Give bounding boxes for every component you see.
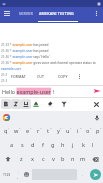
button[interactable]: c: [38, 152, 48, 166]
staticText: 2: [19, 126, 21, 129]
staticText: Hello example-user !: [2, 88, 54, 95]
button[interactable]: m: [78, 152, 88, 166]
button[interactable]: COPY: [52, 70, 74, 83]
button[interactable]: t: [43, 124, 53, 138]
staticText: .: [82, 172, 84, 177]
staticText: #MEKANI TESTING: [39, 11, 74, 16]
button[interactable]: u: [63, 124, 73, 138]
button[interactable]: h: [58, 138, 68, 152]
button[interactable]: Google search: [3, 114, 10, 121]
staticText: v: [52, 155, 55, 163]
button[interactable]: e: [22, 124, 33, 138]
button[interactable]: Voice input: [93, 114, 100, 121]
staticText: SERVER: [19, 11, 33, 16]
staticText: 9: [90, 126, 92, 129]
button[interactable]: Backspace: [88, 152, 103, 166]
button[interactable]: n: [68, 152, 78, 166]
button[interactable]: k: [78, 138, 88, 152]
button[interactable]: More options: [90, 7, 103, 20]
staticText: 1: [8, 126, 10, 129]
button[interactable]: s: [17, 138, 28, 152]
button[interactable]: x: [27, 152, 38, 166]
staticText: q: [4, 127, 8, 135]
button[interactable]: Italic: [11, 99, 21, 109]
button[interactable]: Emoji: [22, 166, 31, 183]
staticText: t: [47, 127, 50, 135]
staticText: 21:36 * example-user says 'Hello': [1, 53, 102, 59]
staticText: e: [26, 127, 30, 135]
button[interactable]: Shift: [0, 152, 16, 166]
button[interactable]: CUT: [30, 70, 52, 83]
button[interactable]: #MEKANI TESTING: [39, 7, 74, 20]
button[interactable]: Bold: [1, 99, 11, 109]
staticText: 4: [40, 126, 42, 129]
staticText: z: [20, 155, 23, 163]
button[interactable]: v: [48, 152, 58, 166]
button[interactable]: Text colour: [31, 99, 41, 109]
button[interactable]: f: [38, 138, 48, 152]
staticText: d: [31, 141, 35, 149]
button[interactable]: g: [48, 138, 58, 152]
button[interactable]: Highlight colour: [45, 99, 55, 109]
staticText: h: [61, 141, 65, 149]
staticText: ?123: [3, 172, 11, 177]
button[interactable]: w: [11, 124, 22, 138]
staticText: f: [42, 141, 44, 149]
staticText: o: [86, 127, 90, 135]
staticText: 21:36 * example-user has joined: [1, 47, 102, 53]
staticText: b: [61, 155, 65, 163]
staticText: i: [77, 127, 79, 135]
button[interactable]: Send message: [91, 85, 103, 97]
staticText: r: [37, 127, 40, 135]
staticText: c: [42, 155, 45, 163]
button[interactable]: j: [68, 138, 78, 152]
staticText: 3: [30, 126, 32, 129]
button[interactable]: o: [83, 124, 93, 138]
staticText: CUT: [37, 74, 45, 79]
button[interactable]: SERVER: [19, 7, 33, 20]
button[interactable]: Open navigation drawer: [0, 7, 13, 20]
staticText: m: [80, 155, 86, 163]
button[interactable]: Close formatting bar: [91, 99, 102, 110]
staticText: 21:33 * example-user has joined: [1, 41, 102, 47]
button[interactable]: Underline: [21, 99, 31, 109]
button[interactable]: b: [58, 152, 68, 166]
staticText: 21:38 * example-user has joined: [1, 77, 102, 83]
button[interactable]: l: [88, 138, 98, 152]
button[interactable]: ?123: [0, 166, 13, 183]
staticText: 21:37 * example-user has joined: [1, 71, 102, 77]
staticText: j: [72, 141, 74, 149]
button[interactable]: a: [6, 138, 17, 152]
button[interactable]: ;: [13, 166, 22, 183]
staticText: ,: [17, 174, 19, 179]
staticText: a: [10, 141, 14, 149]
button[interactable]: i: [73, 124, 83, 138]
staticText: s: [21, 141, 24, 149]
staticText: g: [51, 141, 55, 149]
staticText: u: [66, 127, 70, 135]
button[interactable]: p: [93, 124, 103, 138]
button[interactable]: Clear formatting: [59, 99, 69, 109]
staticText: 7: [70, 126, 72, 129]
staticText: 6: [60, 126, 62, 129]
button[interactable]: z: [16, 152, 27, 166]
button[interactable]: FORMAT: [7, 70, 30, 83]
staticText: FORMAT: [11, 74, 26, 79]
button[interactable]: More: [74, 70, 84, 83]
staticText: 21:36 * example-user gives voice and cha…: [1, 59, 102, 71]
staticText: 8: [80, 126, 82, 129]
button[interactable]: d: [28, 138, 38, 152]
staticText: l: [92, 141, 94, 149]
staticText: COPY: [58, 74, 68, 79]
staticText: 5: [50, 126, 52, 129]
button[interactable]: q: [0, 124, 11, 138]
button[interactable]: Send: [87, 166, 103, 183]
staticText: p: [96, 127, 100, 135]
button[interactable]: r: [33, 124, 43, 138]
staticText: w: [14, 127, 19, 135]
button[interactable]: y: [53, 124, 63, 138]
staticText: ;: [18, 170, 19, 174]
staticText: 0: [100, 126, 102, 129]
